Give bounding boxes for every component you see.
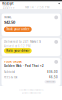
staticText: Receipt [2, 2, 13, 5]
staticText: $6.50 [49, 75, 58, 79]
button[interactable]: View receipt [44, 80, 56, 83]
staticText: Rate your driver [6, 49, 29, 52]
staticText: Arrived at 6:12 PM [4, 44, 30, 48]
staticText: $42.50 [4, 20, 15, 25]
button[interactable]: More options [58, 3, 60, 4]
button[interactable]: Track your order [4, 27, 32, 32]
staticText: $36.00 [47, 70, 58, 74]
staticText: TOTAL [4, 15, 11, 19]
staticText: Golden Wok · Pad Thai ×2 [4, 64, 44, 68]
staticText: View receipt [46, 81, 54, 83]
button[interactable]: Rate your driver [4, 48, 32, 53]
staticText: A copy of this receipt was emailed to yo… [18, 89, 43, 91]
staticText: YOUR ORDER [4, 60, 22, 63]
staticText: Order #48217 [3, 4, 15, 11]
staticText: Track your order [6, 28, 29, 31]
staticText: Delivered to 241 Market St [4, 40, 41, 43]
staticText: Questions? Visit the Help Center. [21, 92, 40, 94]
staticText: Subtotal [4, 70, 15, 74]
staticText: Fees & tax [4, 75, 17, 79]
staticText: Mar 14 · 7:58 PM [25, 5, 49, 9]
